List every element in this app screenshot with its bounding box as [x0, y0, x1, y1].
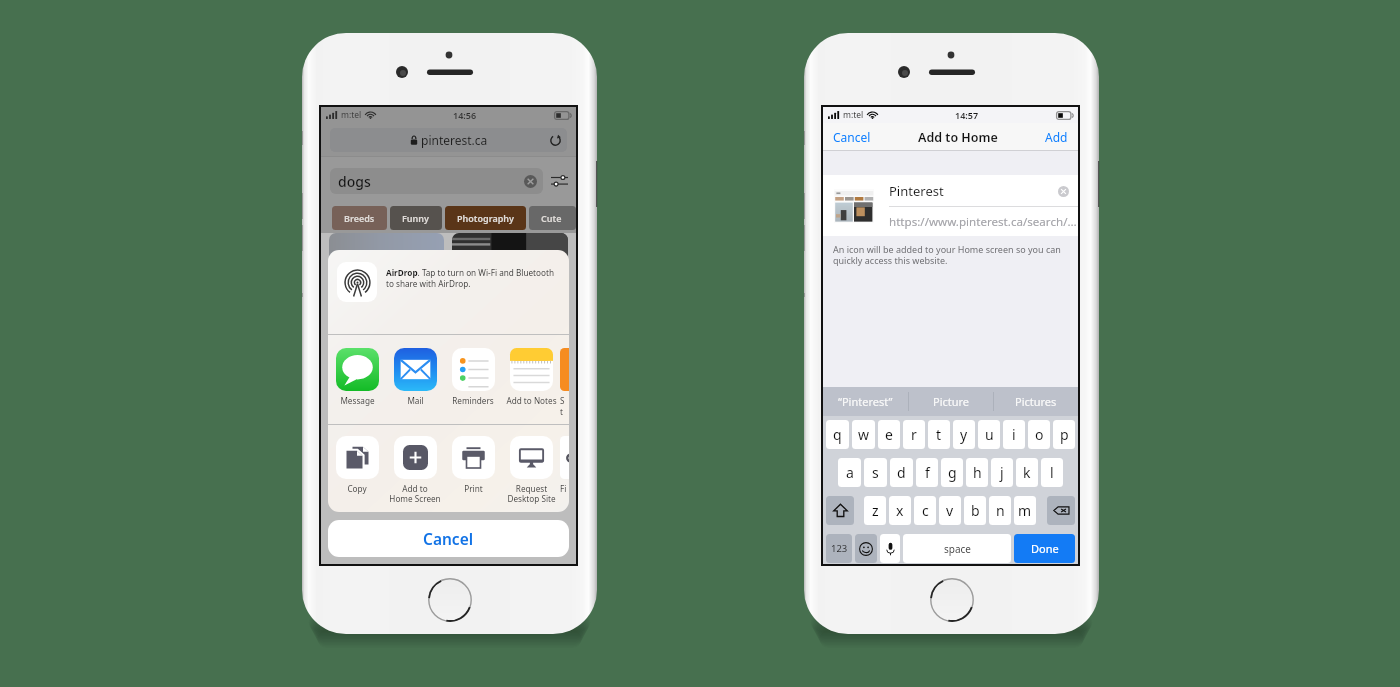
button[interactable]: Copy: [328, 425, 386, 494]
button[interactable]: Request Desktop Site: [502, 425, 560, 504]
button[interactable]: i: [1003, 420, 1025, 449]
staticText: dogs: [338, 172, 371, 191]
staticText: j: [1000, 463, 1004, 482]
staticText: An icon will be added to your Home scree…: [833, 243, 1061, 267]
staticText: u: [985, 425, 994, 444]
button[interactable]: y: [953, 420, 975, 449]
staticText: 14:57: [955, 109, 979, 121]
staticText: Mail: [407, 395, 424, 406]
staticText: p: [1060, 425, 1069, 444]
staticText: i: [1012, 425, 1016, 444]
staticText: s: [872, 463, 879, 482]
staticText: Done: [1031, 541, 1059, 556]
button[interactable]: Print: [444, 425, 502, 494]
staticText: Pinterest: [889, 182, 1058, 200]
staticText: k: [1023, 463, 1031, 482]
staticText: r: [911, 425, 917, 444]
button[interactable]: space: [903, 534, 1011, 563]
staticText: Copy: [347, 483, 367, 494]
button[interactable]: “Pinterest”: [823, 387, 908, 416]
button[interactable]: AirDrop. Tap to turn on Wi-Fi and Blueto…: [337, 250, 560, 334]
staticText: z: [872, 501, 879, 520]
staticText: f: [925, 463, 930, 482]
button[interactable]: n: [989, 496, 1011, 525]
button[interactable]: u: [978, 420, 1000, 449]
button[interactable]: Mail: [386, 335, 444, 406]
button[interactable]: r: [903, 420, 925, 449]
button[interactable]: z: [864, 496, 886, 525]
button[interactable]: Dictate: [880, 534, 900, 563]
staticText: 14:56: [453, 109, 477, 121]
staticText: 123: [831, 542, 848, 555]
staticText: pinterest.ca: [421, 132, 488, 148]
button[interactable]: Pictures: [994, 387, 1078, 416]
button[interactable]: Message: [328, 335, 386, 406]
staticText: Cancel: [423, 528, 474, 549]
button[interactable]: Breeds: [344, 206, 375, 230]
button[interactable]: x: [889, 496, 911, 525]
button[interactable]: Reminders: [444, 335, 502, 406]
button[interactable]: Emoji: [855, 534, 877, 563]
staticText: x: [896, 501, 904, 520]
staticText: m:tel: [341, 109, 362, 121]
staticText: e: [885, 425, 893, 444]
button[interactable]: Picture: [909, 387, 993, 416]
button[interactable]: Add to Home Screen: [386, 425, 444, 504]
staticText: c: [922, 501, 929, 520]
button[interactable]: d: [890, 458, 913, 487]
staticText: m:tel: [843, 109, 864, 121]
button[interactable]: Shift: [826, 496, 854, 525]
button[interactable]: Photography: [457, 206, 514, 230]
staticText: Add: [1045, 129, 1068, 145]
button[interactable]: Add: [1043, 127, 1070, 147]
staticText: t: [936, 425, 942, 444]
button[interactable]: h: [966, 458, 988, 487]
button[interactable]: Cancel: [831, 127, 873, 147]
button[interactable]: e: [878, 420, 900, 449]
staticText: Request Desktop Site: [507, 483, 556, 504]
staticText: Picture: [933, 394, 970, 409]
button[interactable]: Cutest: [541, 206, 564, 230]
staticText: Photography: [457, 212, 514, 224]
button[interactable]: Done: [1014, 534, 1075, 563]
button[interactable]: l: [1041, 458, 1063, 487]
staticText: “Pinterest”: [838, 394, 893, 409]
button[interactable]: Cancel: [328, 520, 569, 557]
staticText: n: [996, 501, 1005, 520]
staticText: Cancel: [833, 129, 871, 145]
staticText: space: [944, 542, 971, 556]
button[interactable]: s: [864, 458, 887, 487]
button[interactable]: f: [916, 458, 938, 487]
staticText: y: [960, 425, 968, 444]
button[interactable]: c: [914, 496, 936, 525]
button[interactable]: Funny: [402, 206, 430, 230]
staticText: Add to Notes: [506, 395, 557, 406]
staticText: l: [1050, 463, 1054, 482]
button[interactable]: m: [1014, 496, 1036, 525]
button[interactable]: t: [928, 420, 950, 449]
staticText: Message: [340, 395, 375, 406]
button[interactable]: g: [941, 458, 963, 487]
staticText: Breeds: [344, 212, 375, 224]
button[interactable]: a: [838, 458, 861, 487]
staticText: Find: [560, 483, 569, 494]
button[interactable]: w: [852, 420, 875, 449]
staticText: q: [833, 425, 842, 444]
staticText: h: [973, 463, 982, 482]
staticText: Funny: [402, 212, 430, 224]
button[interactable]: Clear name: [1058, 186, 1069, 197]
button[interactable]: p: [1053, 420, 1075, 449]
button[interactable]: k: [1016, 458, 1038, 487]
staticText: Add to Home: [918, 129, 998, 146]
button[interactable]: b: [964, 496, 986, 525]
staticText: w: [858, 425, 870, 444]
button[interactable]: 123: [826, 534, 852, 563]
button[interactable]: o: [1028, 420, 1050, 449]
button[interactable]: q: [826, 420, 849, 449]
staticText: Print: [464, 483, 483, 494]
button[interactable]: v: [939, 496, 961, 525]
button[interactable]: Backspace: [1047, 496, 1075, 525]
button[interactable]: j: [991, 458, 1013, 487]
staticText: Add to Home Screen: [389, 483, 441, 504]
button[interactable]: Add to Notes: [502, 335, 560, 406]
